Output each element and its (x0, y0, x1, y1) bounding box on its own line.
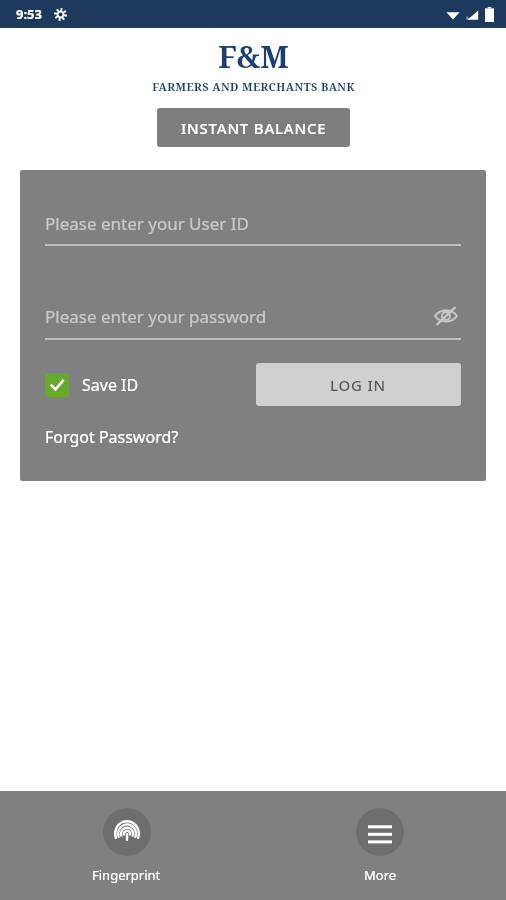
staticText: FARMERS AND MERCHANTS BANK (152, 79, 355, 94)
button[interactable]: Save ID (45, 373, 139, 397)
staticText: F&M (218, 36, 289, 77)
button[interactable]: Please enter your User ID (45, 212, 461, 246)
staticText: Please enter your password (45, 305, 267, 328)
staticText: LOG IN (330, 375, 387, 395)
button[interactable]: INSTANT BALANCE (157, 108, 350, 147)
button[interactable]: Fingerprint (74, 804, 179, 888)
button[interactable]: Please enter your password (45, 305, 431, 328)
staticText: More (364, 866, 397, 884)
staticText: 9:53 (16, 5, 42, 23)
button[interactable]: More (338, 804, 422, 888)
button[interactable]: Show password (431, 301, 461, 331)
button[interactable]: Forgot Password? (45, 426, 179, 448)
staticText: Forgot Password? (45, 426, 179, 448)
staticText: INSTANT BALANCE (181, 118, 327, 138)
staticText: Please enter your User ID (45, 212, 249, 235)
staticText: Save ID (82, 374, 139, 396)
button[interactable]: LOG IN (256, 363, 461, 406)
staticText: Fingerprint (92, 866, 161, 884)
